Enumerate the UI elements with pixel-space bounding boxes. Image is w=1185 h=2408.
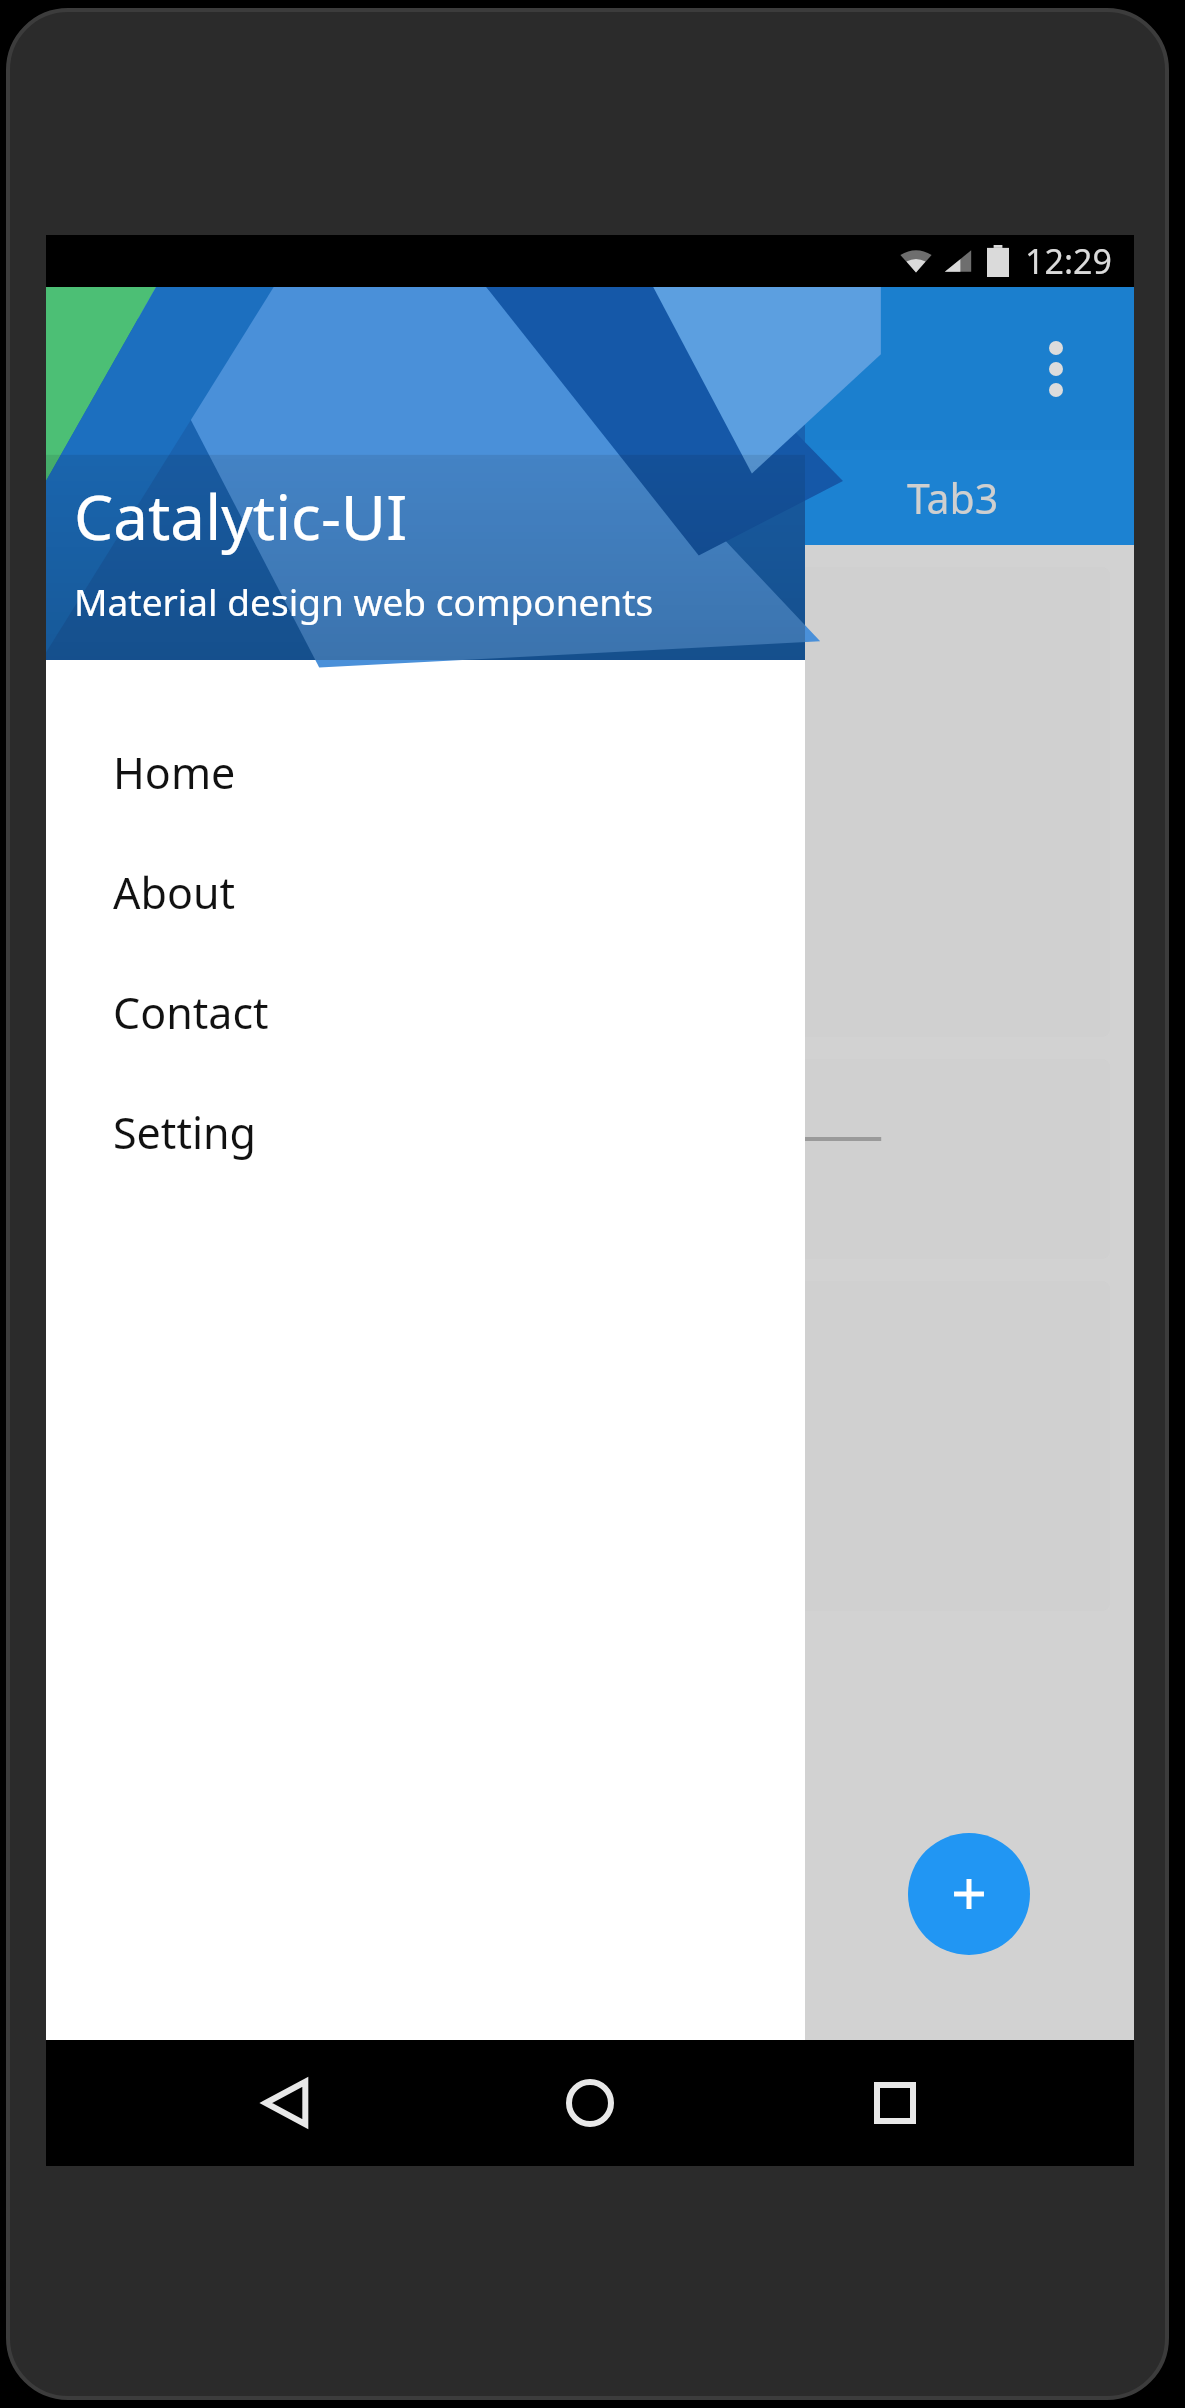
button[interactable] xyxy=(70,1281,1110,1611)
staticText: Setting xyxy=(113,1103,257,1162)
staticText: Tab3 xyxy=(907,470,999,526)
button[interactable]: More options xyxy=(1006,319,1106,419)
staticText: Material design web components xyxy=(74,576,654,626)
button[interactable]: Back xyxy=(221,2040,351,2166)
staticText: Contact xyxy=(113,983,269,1042)
staticText: Home xyxy=(113,743,236,802)
staticText: 12:29 xyxy=(1025,238,1112,284)
button[interactable] xyxy=(408,450,771,545)
button[interactable] xyxy=(70,1059,1110,1259)
button[interactable] xyxy=(70,567,1110,1037)
staticText: About xyxy=(113,863,236,922)
button[interactable]: About xyxy=(46,832,805,952)
button[interactable] xyxy=(46,450,408,545)
button[interactable]: Setting xyxy=(46,1072,805,1192)
button[interactable]: Contact xyxy=(46,952,805,1072)
button[interactable]: Recent apps xyxy=(830,2040,960,2166)
button[interactable]: Home xyxy=(525,2040,655,2166)
button[interactable]: Home xyxy=(46,712,805,832)
button[interactable]: Add xyxy=(908,1833,1030,1955)
staticText: Catalytic-UI xyxy=(74,474,408,558)
button[interactable]: Tab3 xyxy=(771,450,1134,545)
